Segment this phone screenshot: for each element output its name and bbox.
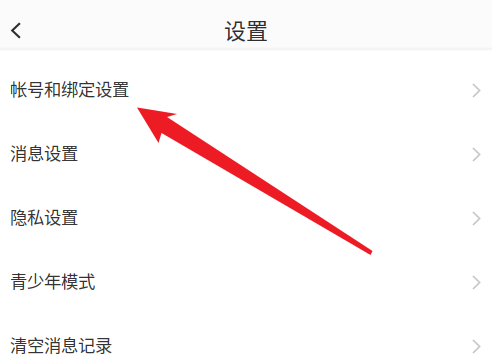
button[interactable]: 青少年模式 bbox=[0, 242, 492, 306]
button[interactable]: 帐号和绑定设置 bbox=[0, 50, 492, 114]
button[interactable]: 消息设置 bbox=[0, 114, 492, 178]
staticText: 帐号和绑定设置 bbox=[10, 76, 129, 101]
staticText: 消息设置 bbox=[10, 140, 78, 165]
staticText: 清空消息记录 bbox=[10, 332, 112, 357]
staticText: 设置 bbox=[224, 14, 268, 45]
staticText: 隐私设置 bbox=[10, 204, 78, 229]
button[interactable]: 清空消息记录 bbox=[0, 306, 492, 364]
button[interactable]: 隐私设置 bbox=[0, 178, 492, 242]
staticText: 青少年模式 bbox=[10, 268, 95, 293]
button[interactable]: Back bbox=[0, 0, 45, 42]
